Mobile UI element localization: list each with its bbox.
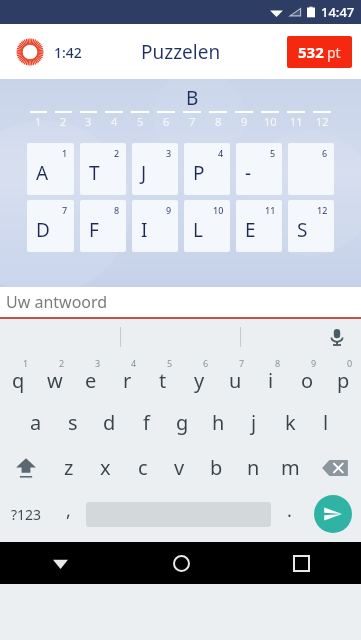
staticText: 8 (275, 357, 281, 369)
staticText: d (103, 409, 116, 436)
button[interactable]: F (80, 200, 126, 252)
other: Timer (16, 38, 44, 66)
button[interactable]: b (198, 445, 235, 490)
button[interactable]: D (27, 200, 74, 252)
button[interactable]: j (236, 400, 272, 445)
button[interactable]: d (91, 400, 128, 445)
button[interactable]: 0 (325, 354, 361, 400)
button[interactable]: . (274, 490, 304, 538)
button[interactable]: n (235, 445, 272, 490)
button[interactable] (241, 319, 361, 354)
button[interactable]: s (54, 400, 91, 445)
button[interactable]: 5 (145, 354, 181, 400)
button[interactable]: 1 (0, 354, 37, 400)
button[interactable]: Uw antwoord (0, 287, 361, 319)
button[interactable]: Back (0, 542, 121, 584)
staticText: u (229, 367, 242, 394)
button[interactable]: v (161, 445, 198, 490)
button[interactable]: 2 (37, 354, 73, 400)
button[interactable]: Shift (0, 445, 51, 490)
button[interactable]: ?123 (0, 490, 53, 538)
staticText: 12 (316, 114, 329, 129)
button[interactable]: Voice input (327, 327, 347, 347)
staticText: . (287, 498, 292, 523)
button[interactable]: k (272, 400, 308, 445)
staticText: 4 (131, 357, 137, 369)
staticText: h (212, 409, 225, 436)
button[interactable]: 6 (181, 354, 217, 400)
staticText: F (89, 217, 99, 243)
button[interactable]: Backspace (309, 445, 361, 490)
button[interactable]: c (124, 445, 161, 490)
button[interactable]: 532 (287, 36, 352, 68)
button[interactable]: 3 (73, 354, 109, 400)
staticText: r (123, 367, 132, 394)
staticText: P (193, 160, 205, 186)
staticText: x (100, 454, 111, 481)
button[interactable]: Home (121, 542, 241, 584)
button[interactable]: h (200, 400, 236, 445)
button[interactable]: z (51, 445, 87, 490)
button[interactable]: a (17, 400, 54, 445)
button[interactable]: 8 (253, 354, 289, 400)
staticText: i (268, 367, 274, 394)
staticText: 7 (62, 204, 68, 216)
button[interactable]: g (164, 400, 200, 445)
button[interactable]: P (184, 143, 230, 195)
staticText: 9 (241, 114, 248, 129)
button[interactable]: E (236, 200, 282, 252)
button[interactable]: 4 (109, 354, 145, 400)
staticText: e (85, 367, 97, 394)
staticText: 10 (264, 114, 277, 129)
button[interactable]: J (132, 143, 178, 195)
button[interactable]: m (272, 445, 309, 490)
button[interactable]: l (308, 400, 344, 445)
button[interactable]: f (128, 400, 164, 445)
staticText: 3 (166, 147, 172, 159)
staticText: 532 (298, 42, 324, 62)
staticText: I (141, 217, 148, 243)
staticText: 1 (62, 147, 68, 159)
button[interactable]: - (236, 143, 282, 195)
staticText: s (68, 409, 78, 436)
button[interactable]: T (80, 143, 126, 195)
button[interactable]: Timer (12, 34, 86, 70)
staticText: 6 (322, 147, 328, 159)
button[interactable]: , (53, 490, 83, 538)
button[interactable]: A (27, 143, 74, 195)
staticText: f (143, 409, 150, 436)
button[interactable]: 6 (288, 143, 334, 195)
button[interactable]: 9 (289, 354, 325, 400)
button[interactable]: S (288, 200, 334, 252)
staticText: , (66, 498, 71, 523)
staticText: 2 (60, 114, 67, 129)
staticText: 7 (239, 357, 245, 369)
staticText: 4 (218, 147, 224, 159)
button[interactable]: Recent apps (241, 542, 361, 584)
staticText: a (30, 409, 42, 436)
button[interactable]: L (184, 200, 230, 252)
button[interactable]: Send (314, 495, 352, 533)
button[interactable]: 7 (217, 354, 253, 400)
staticText: - (245, 160, 252, 186)
button[interactable]: I (132, 200, 178, 252)
button[interactable]: x (87, 445, 124, 490)
staticText: 2 (59, 357, 65, 369)
staticText: A (36, 160, 49, 186)
staticText: l (323, 409, 329, 436)
